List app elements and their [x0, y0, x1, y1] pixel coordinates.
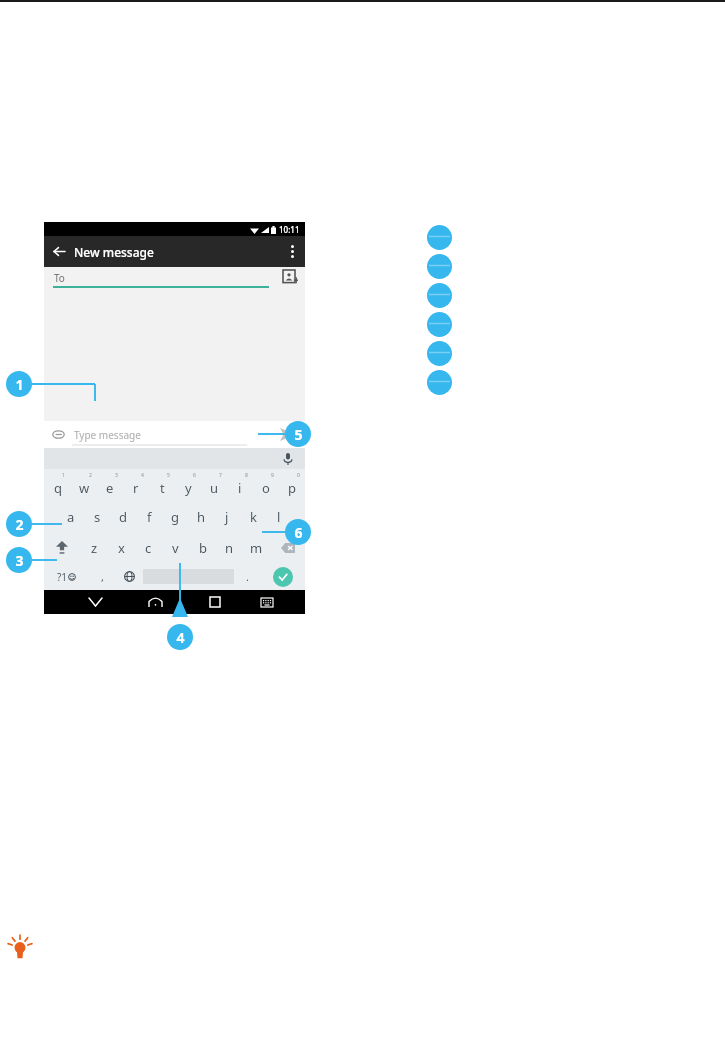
button[interactable]: z	[80, 532, 108, 563]
button[interactable]: 5	[149, 469, 175, 501]
staticText: r	[133, 479, 139, 497]
staticText: n	[225, 539, 234, 557]
button[interactable]: Done	[261, 563, 305, 590]
button[interactable]: h	[188, 501, 214, 532]
staticText: i	[238, 479, 242, 497]
button[interactable]: m	[243, 532, 270, 563]
button[interactable]: c	[135, 532, 162, 563]
button[interactable]: v	[162, 532, 189, 563]
button[interactable]: Change language	[116, 563, 143, 590]
staticText: 5	[167, 472, 170, 479]
button[interactable]: 5	[285, 421, 311, 447]
staticText: 7	[219, 472, 222, 479]
staticText: p	[288, 479, 296, 497]
button[interactable]: b	[189, 532, 216, 563]
button[interactable]: 3	[97, 469, 123, 501]
staticText: z	[91, 539, 98, 557]
staticText: To	[54, 271, 65, 285]
button[interactable]: 6	[285, 519, 311, 545]
button[interactable]: Item 2	[427, 254, 452, 279]
staticText: q	[54, 479, 62, 497]
button[interactable]: Back	[44, 236, 74, 267]
button[interactable]: ,	[89, 563, 116, 590]
button[interactable]: 2	[71, 469, 97, 501]
staticText: 6	[193, 472, 196, 479]
staticText: 5	[294, 425, 303, 444]
button[interactable]: 9	[253, 469, 279, 501]
button[interactable]: .	[234, 563, 261, 590]
staticText: m	[250, 539, 263, 557]
button[interactable]: Voice input	[281, 452, 295, 466]
staticText: a	[67, 508, 75, 526]
staticText: o	[262, 479, 270, 497]
button[interactable]: Space	[143, 569, 234, 584]
button[interactable]: l	[266, 501, 292, 532]
staticText: ?1	[57, 570, 68, 584]
staticText: y	[185, 479, 192, 497]
button[interactable]: 3	[6, 547, 32, 573]
button[interactable]: 7	[201, 469, 227, 501]
staticText: t	[160, 479, 165, 497]
staticText: 1	[15, 375, 24, 394]
button[interactable]: Symbols	[44, 563, 89, 590]
button[interactable]: a	[58, 501, 84, 532]
button[interactable]: 4	[123, 469, 149, 501]
button[interactable]: 8	[227, 469, 253, 501]
button[interactable]: n	[216, 532, 243, 563]
button[interactable]: 2	[6, 511, 32, 537]
staticText: k	[250, 508, 257, 526]
button[interactable]: k	[240, 501, 266, 532]
button[interactable]: Send	[271, 421, 305, 448]
staticText: 2	[15, 515, 24, 534]
staticText: h	[197, 508, 206, 526]
button[interactable]: 1	[6, 371, 32, 397]
button[interactable]: d	[110, 501, 136, 532]
staticText: 2	[89, 472, 92, 479]
staticText: 9	[271, 472, 274, 479]
staticText: 1	[62, 472, 65, 479]
button[interactable]: Switch keyboard	[243, 590, 291, 614]
button[interactable]: 1	[44, 469, 71, 501]
button[interactable]: Item 3	[427, 283, 452, 308]
button[interactable]: j	[214, 501, 240, 532]
button[interactable]: x	[108, 532, 135, 563]
staticText: 8	[245, 472, 248, 479]
staticText: 10:11	[279, 224, 300, 235]
button[interactable]: Hide keyboard	[71, 590, 119, 614]
button[interactable]: Item 1	[427, 225, 452, 250]
button[interactable]: Backspace	[270, 532, 305, 563]
staticText: u	[210, 479, 219, 497]
button[interactable]: 4	[167, 624, 193, 650]
button[interactable]: Attach	[44, 421, 72, 448]
staticText: 4	[141, 472, 144, 479]
button[interactable]: Add contact	[283, 270, 298, 285]
staticText: x	[118, 539, 125, 557]
staticText: w	[79, 479, 90, 497]
staticText: 3	[115, 472, 118, 479]
staticText: e	[106, 479, 114, 497]
staticText: 6	[294, 523, 303, 542]
button[interactable]: Home	[131, 590, 179, 614]
staticText: New message	[74, 244, 154, 260]
staticText: l	[277, 508, 281, 526]
staticText: j	[225, 508, 229, 526]
button[interactable]: Item 5	[427, 341, 452, 366]
staticText: Type message	[74, 428, 141, 442]
button[interactable]: s	[84, 501, 110, 532]
staticText: .	[246, 569, 249, 584]
button[interactable]: Recent apps	[191, 590, 239, 614]
button[interactable]: f	[136, 501, 162, 532]
button[interactable]: Shift	[44, 532, 80, 563]
staticText: g	[171, 508, 179, 526]
staticText: 0	[297, 472, 300, 479]
staticText: 4	[176, 628, 185, 647]
button[interactable]: 6	[175, 469, 201, 501]
button[interactable]: Item 4	[427, 312, 452, 337]
button[interactable]: 0	[279, 469, 305, 501]
staticText: 3	[15, 551, 24, 570]
button[interactable]: More options	[279, 236, 305, 267]
button[interactable]: g	[162, 501, 188, 532]
staticText: f	[147, 508, 152, 526]
staticText: v	[172, 539, 179, 557]
button[interactable]: Item 6	[427, 370, 452, 395]
